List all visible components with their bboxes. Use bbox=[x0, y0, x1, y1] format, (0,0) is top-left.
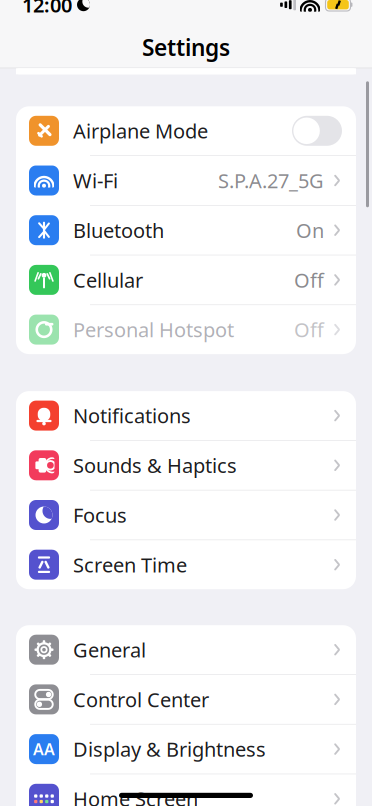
staticText: Settings bbox=[142, 32, 230, 62]
staticText: Bluetooth bbox=[73, 217, 164, 243]
button[interactable]: Control Center bbox=[16, 675, 356, 724]
staticText: Wi-Fi bbox=[73, 167, 118, 194]
button[interactable]: Focus bbox=[16, 490, 356, 539]
staticText: Notifications bbox=[73, 402, 191, 429]
staticText: Airplane Mode bbox=[73, 117, 208, 144]
button[interactable]: Screen Time bbox=[16, 540, 356, 589]
button[interactable]: Home Screen bbox=[16, 774, 356, 806]
staticText: Off bbox=[294, 267, 324, 293]
staticText: General bbox=[73, 636, 146, 663]
staticText: 12:00 bbox=[22, 0, 72, 18]
button[interactable]: Airplane Mode bbox=[16, 106, 356, 155]
staticText: AA bbox=[33, 738, 55, 760]
staticText: Control Center bbox=[73, 686, 209, 713]
staticText: S.P.A.27_5G bbox=[218, 167, 324, 194]
button[interactable]: Wi-Fi bbox=[16, 156, 356, 205]
staticText: Off bbox=[294, 316, 324, 343]
button[interactable]: Sounds & Haptics bbox=[16, 441, 356, 490]
staticText: Focus bbox=[73, 502, 127, 528]
staticText: Screen Time bbox=[73, 551, 187, 578]
button[interactable]: Personal Hotspot bbox=[16, 305, 356, 354]
staticText: Personal Hotspot bbox=[73, 316, 234, 343]
staticText: Home Screen bbox=[73, 785, 198, 806]
staticText: On bbox=[296, 217, 324, 243]
staticText: Sounds & Haptics bbox=[73, 452, 237, 479]
staticText: Cellular bbox=[73, 267, 143, 293]
button[interactable]: General bbox=[16, 625, 356, 674]
button[interactable]: Bluetooth bbox=[16, 206, 356, 255]
button[interactable]: AA bbox=[16, 725, 356, 774]
button[interactable]: Notifications bbox=[16, 391, 356, 440]
staticText: Display & Brightness bbox=[73, 736, 266, 762]
button[interactable]: Cellular bbox=[16, 255, 356, 304]
